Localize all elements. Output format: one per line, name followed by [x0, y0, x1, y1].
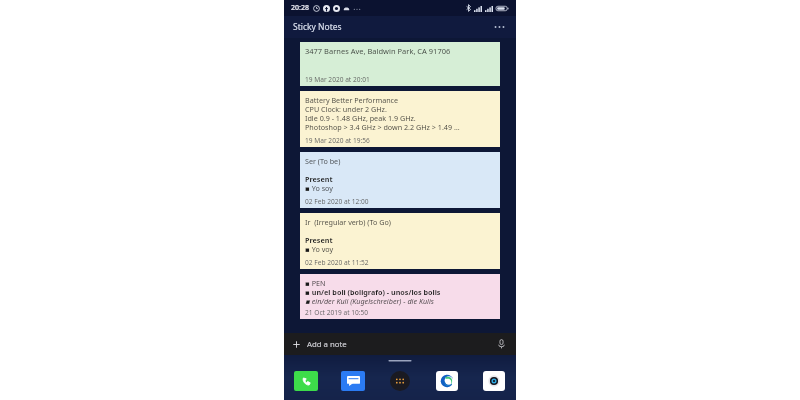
button[interactable]: Battery Better Performance CPU Clock: un… [300, 91, 500, 147]
button[interactable]: More options [491, 19, 507, 35]
staticText: ▪ PEN ▪ un/el boli (boligrafo) - unos/lo… [305, 278, 441, 306]
button[interactable]: ▪ PEN ▪ un/el boli (boligrafo) - unos/lo… [300, 274, 500, 319]
button[interactable]: Voice note [494, 337, 508, 351]
staticText: 21 Oct 2019 at 10:50 [305, 308, 369, 317]
button[interactable]: Camera [482, 369, 506, 393]
staticText: Add a note [307, 339, 347, 350]
staticText: 19 Mar 2020 at 20:01 [305, 75, 370, 84]
staticText: Sticky Notes [293, 21, 342, 33]
staticText: 19 Mar 2020 at 19:56 [305, 136, 370, 145]
staticText: 3477 Barnes Ave, Baldwin Park, CA 91706 [305, 46, 451, 56]
button[interactable]: Ser (To be) Present ▪ Yo soy [300, 152, 500, 208]
staticText: Ir (Irregular verb) (To Go) Present ▪ Yo… [305, 217, 391, 254]
button[interactable]: Messages [341, 369, 365, 393]
staticText: 02 Feb 2020 at 12:00 [305, 197, 369, 206]
staticText: 02 Feb 2020 at 11:52 [305, 258, 369, 267]
button[interactable]: App drawer [388, 369, 412, 393]
staticText: Battery Better Performance CPU Clock: un… [305, 95, 460, 132]
button[interactable]: Ir (Irregular verb) (To Go) Present ▪ Yo… [300, 213, 500, 269]
button[interactable]: Phone [294, 369, 318, 393]
staticText: 20:28 [291, 3, 309, 13]
button[interactable]: 3477 Barnes Ave, Baldwin Park, CA 91706 [300, 42, 500, 86]
staticText: Ser (To be) Present ▪ Yo soy [305, 156, 341, 193]
button[interactable]: Edge browser [435, 369, 459, 393]
button[interactable]: Add a note [284, 333, 516, 355]
